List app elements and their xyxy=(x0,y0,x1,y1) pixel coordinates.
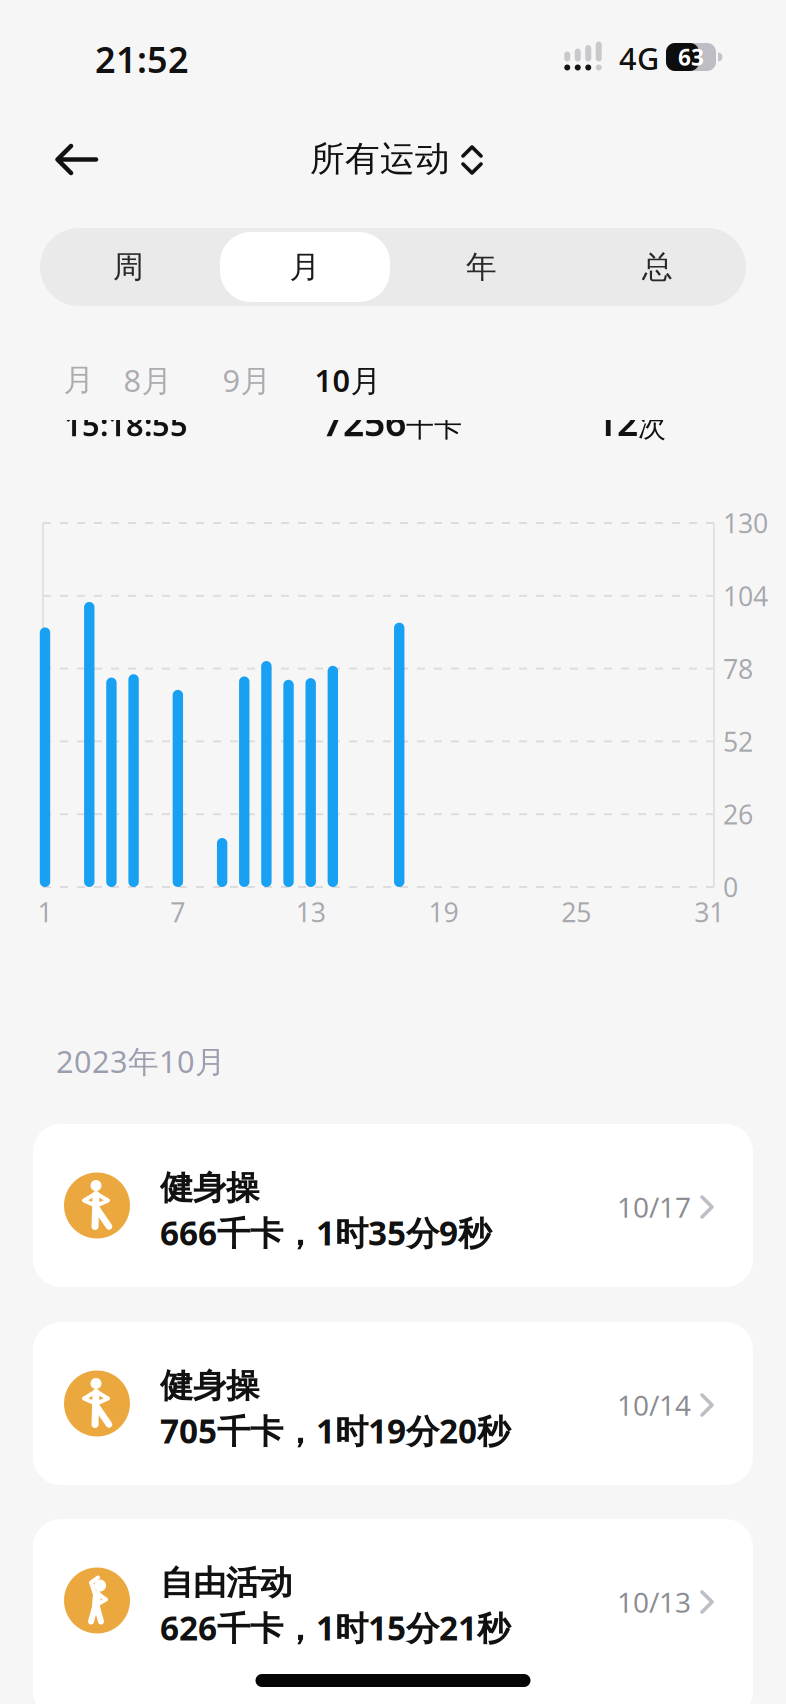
staticText: 月 xyxy=(63,361,94,399)
staticText: 0 xyxy=(723,869,738,905)
button[interactable]: 9月 xyxy=(222,360,271,400)
staticText: 7256 xyxy=(322,397,406,446)
staticText: 104 xyxy=(723,578,768,613)
staticText: 52 xyxy=(723,724,753,759)
button[interactable]: 8月 xyxy=(123,360,172,400)
staticText: 周 xyxy=(113,248,144,286)
staticText: 130 xyxy=(723,505,768,541)
staticText: 10/14 xyxy=(617,1386,691,1424)
staticText: 705千卡，1时19分20秒 xyxy=(160,1408,510,1453)
staticText: 10/13 xyxy=(617,1583,691,1621)
button[interactable]: 自由活动 xyxy=(0,0,786,1704)
staticText: 健身操 xyxy=(160,1365,259,1406)
button[interactable]: 健身操 xyxy=(0,0,786,1704)
button[interactable]: 所有运动 xyxy=(0,0,786,1704)
staticText: 4G xyxy=(619,38,659,78)
button[interactable]: 年 xyxy=(393,228,569,306)
staticText: 626千卡，1时15分21秒 xyxy=(160,1605,510,1650)
button[interactable]: Back xyxy=(0,0,786,1704)
staticText: 1 xyxy=(37,894,52,930)
staticText: 26 xyxy=(723,796,753,832)
staticText: 2023年10月 xyxy=(56,1041,226,1081)
staticText: 9月 xyxy=(222,360,271,400)
staticText: 7 xyxy=(170,894,185,930)
staticText: 19 xyxy=(428,894,458,930)
staticText: 总 xyxy=(642,248,673,286)
staticText: 千卡 xyxy=(406,410,462,444)
staticText: 10/17 xyxy=(617,1188,691,1226)
staticText: 年 xyxy=(466,248,497,286)
button[interactable]: 月 xyxy=(63,361,94,399)
staticText: 63 xyxy=(678,42,704,72)
staticText: 10月 xyxy=(314,360,381,400)
staticText: 12 xyxy=(596,397,638,446)
button[interactable]: 周 xyxy=(40,228,216,306)
button[interactable]: 总 xyxy=(569,228,745,306)
button[interactable]: 月 xyxy=(220,232,390,302)
staticText: 健身操 xyxy=(160,1167,259,1208)
button[interactable]: 10月 xyxy=(314,360,381,400)
button[interactable]: 健身操 xyxy=(0,0,786,1704)
staticText: 月 xyxy=(289,248,320,286)
staticText: 78 xyxy=(723,651,753,686)
staticText: 自由活动 xyxy=(160,1562,292,1603)
staticText: 31 xyxy=(694,894,724,930)
staticText: 21:52 xyxy=(95,35,189,83)
staticText: 666千卡，1时35分9秒 xyxy=(160,1210,491,1255)
staticText: 所有运动 xyxy=(310,138,450,180)
staticText: 15:18:55 xyxy=(64,404,188,445)
staticText: 13 xyxy=(296,894,326,930)
staticText: 25 xyxy=(561,894,591,930)
staticText: 次 xyxy=(638,410,666,444)
staticText: 8月 xyxy=(123,360,172,400)
